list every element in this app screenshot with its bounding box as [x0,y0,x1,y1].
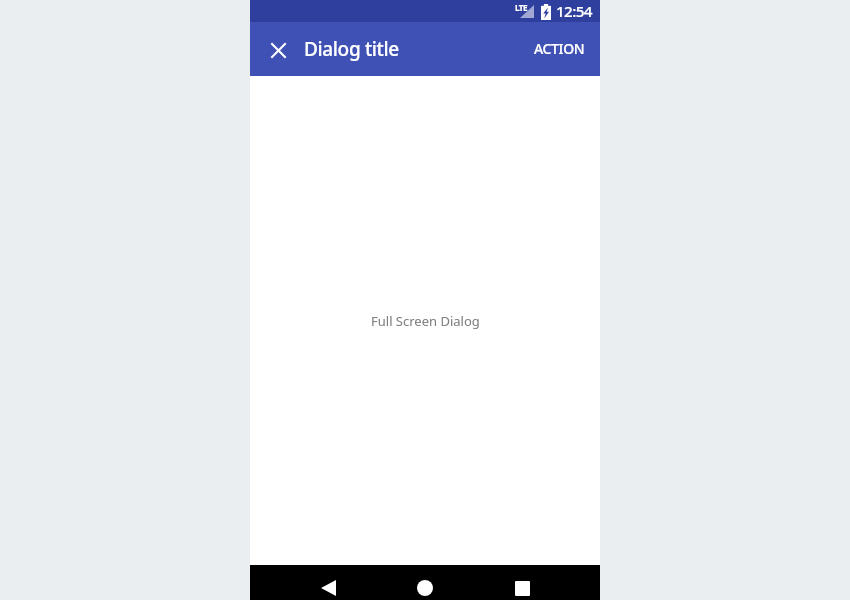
button[interactable]: ACTION [526,34,593,65]
button[interactable]: Home [405,565,445,600]
staticText: Dialog title [304,36,399,62]
staticText: Full Screen Dialog [371,312,480,330]
staticText: ACTION [534,39,585,58]
staticText: LTE [515,2,528,13]
button[interactable]: Back [308,565,348,600]
staticText: 12:54 [556,1,592,22]
button[interactable]: Recents [502,565,542,600]
button[interactable]: Close [262,33,294,65]
